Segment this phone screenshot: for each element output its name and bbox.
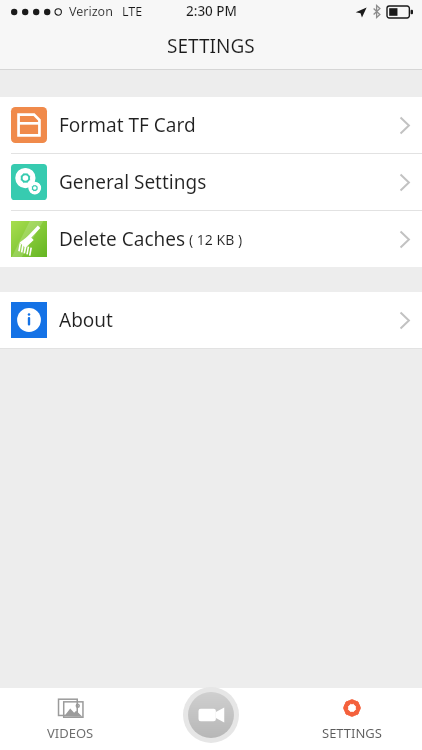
staticText: General Settings (59, 169, 207, 195)
button[interactable]: Delete Caches (0, 211, 422, 267)
staticText: LTE (122, 3, 143, 20)
staticText: Verizon (69, 3, 113, 20)
staticText: About (59, 307, 113, 333)
staticText: SETTINGS (322, 724, 382, 742)
button[interactable]: VIDEOS (0, 688, 140, 750)
button[interactable]: Record video (140, 688, 281, 750)
staticText: Format TF Card (59, 112, 196, 138)
button[interactable]: Format TF Card (0, 97, 422, 153)
staticText: 2:30 PM (186, 2, 237, 20)
button[interactable]: About (0, 292, 422, 348)
staticText: SETTINGS (167, 33, 255, 59)
staticText: ( 12 KB ) (189, 230, 243, 249)
button[interactable]: General Settings (0, 154, 422, 210)
staticText: VIDEOS (47, 724, 94, 742)
button[interactable]: SETTINGS (281, 688, 422, 750)
staticText: Delete Caches (59, 226, 186, 252)
